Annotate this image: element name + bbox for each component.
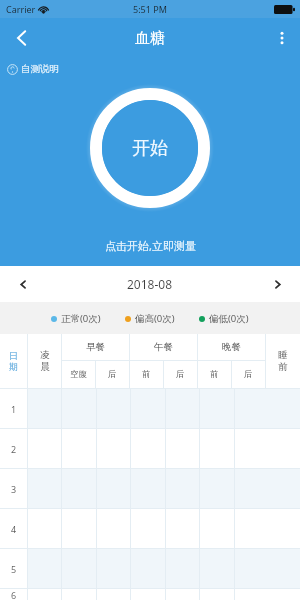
button[interactable]: 4 bbox=[0, 509, 300, 548]
staticText: 5:51 PM bbox=[133, 3, 167, 15]
staticText: 晨 bbox=[40, 361, 50, 373]
staticText: 空腹 bbox=[70, 369, 87, 380]
staticText: 睡 bbox=[278, 349, 288, 361]
staticText: 3 bbox=[11, 483, 17, 495]
staticText: 晚餐 bbox=[222, 341, 241, 353]
staticText: 2018-08 bbox=[127, 276, 173, 292]
button[interactable]: Back bbox=[0, 18, 44, 58]
staticText: 期 bbox=[9, 361, 18, 372]
button[interactable]: 6 bbox=[0, 589, 300, 600]
staticText: 偏高(0次) bbox=[135, 312, 175, 325]
button[interactable]: 5 bbox=[0, 549, 300, 588]
staticText: 自测说明 bbox=[21, 63, 59, 75]
staticText: 开始 bbox=[132, 137, 168, 160]
button[interactable]: Next month bbox=[254, 266, 300, 302]
staticText: 午餐 bbox=[154, 341, 173, 353]
button[interactable]: 3 bbox=[0, 469, 300, 508]
staticText: 前 bbox=[210, 369, 219, 380]
staticText: 前 bbox=[278, 361, 288, 373]
button[interactable]: 1 bbox=[0, 389, 300, 428]
staticText: 早餐 bbox=[86, 341, 105, 353]
staticText: 正常(0次) bbox=[61, 312, 101, 325]
staticText: 点击开始,立即测量 bbox=[105, 238, 196, 253]
staticText: 4 bbox=[11, 523, 17, 535]
button[interactable]: 正常(0次) bbox=[49, 308, 103, 329]
button[interactable]: 自测说明 bbox=[7, 63, 59, 75]
staticText: 1 bbox=[11, 403, 17, 415]
button[interactable]: Previous month bbox=[0, 266, 46, 302]
staticText: 日 bbox=[9, 350, 18, 361]
staticText: 6 bbox=[11, 589, 17, 600]
staticText: 后 bbox=[244, 369, 253, 380]
staticText: 后 bbox=[108, 369, 117, 380]
staticText: 5 bbox=[11, 563, 17, 575]
button[interactable]: 偏低(0次) bbox=[197, 308, 251, 329]
button[interactable]: 偏高(0次) bbox=[123, 308, 177, 329]
button[interactable]: 2 bbox=[0, 429, 300, 468]
button[interactable]: More options bbox=[264, 18, 300, 58]
staticText: 血糖 bbox=[135, 29, 165, 48]
staticText: 后 bbox=[176, 369, 185, 380]
staticText: 前 bbox=[142, 369, 151, 380]
staticText: Carrier bbox=[6, 3, 36, 15]
staticText: 凌 bbox=[40, 349, 50, 361]
button[interactable]: 开始 bbox=[86, 84, 214, 212]
staticText: 2 bbox=[11, 443, 17, 455]
staticText: 偏低(0次) bbox=[209, 312, 249, 325]
